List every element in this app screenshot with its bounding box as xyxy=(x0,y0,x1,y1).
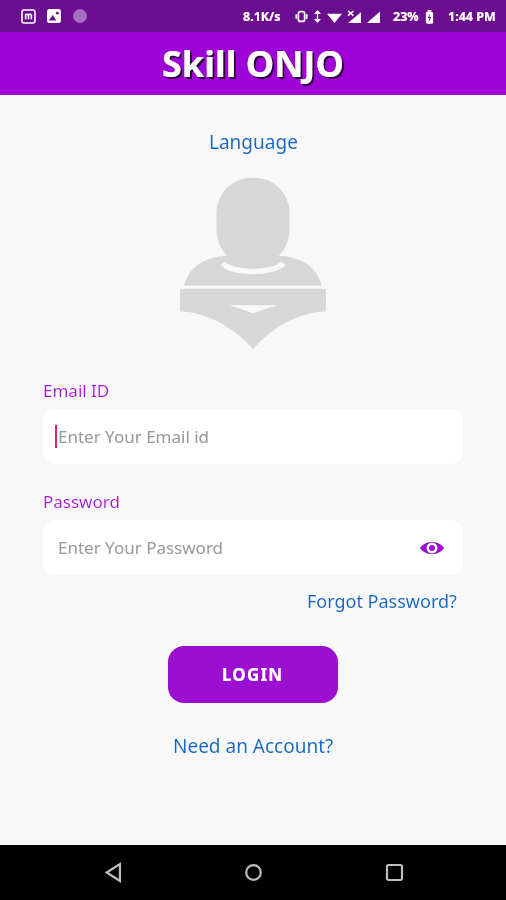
staticText: Enter Your Email id xyxy=(58,425,447,448)
button[interactable]: Recent apps xyxy=(366,845,422,900)
staticText: LOGIN xyxy=(222,663,284,686)
button[interactable]: Enter Your Email id xyxy=(43,409,463,464)
button[interactable]: Back xyxy=(85,845,141,900)
staticText: 8.1K/s xyxy=(243,8,281,25)
button[interactable]: Enter Your Password xyxy=(43,520,463,575)
staticText: Skill ONJO xyxy=(164,41,346,90)
other: Student avatar xyxy=(177,175,329,351)
staticText: 23% xyxy=(393,8,419,25)
staticText: 1:44 PM xyxy=(448,8,496,25)
staticText: Skill ONJO xyxy=(162,39,344,88)
staticText: Need an Account? xyxy=(173,733,334,759)
staticText: Email ID xyxy=(43,379,110,402)
staticText: Enter Your Password xyxy=(58,536,417,559)
button[interactable]: Show password xyxy=(417,533,447,563)
button[interactable]: LOGIN xyxy=(168,646,338,703)
button[interactable]: Forgot Password? xyxy=(301,586,463,617)
button[interactable]: Need an Account? xyxy=(165,730,342,762)
staticText: Forgot Password? xyxy=(307,589,457,614)
staticText: Password xyxy=(43,490,120,513)
button[interactable]: Language xyxy=(199,127,308,157)
button[interactable]: Home xyxy=(225,845,281,900)
staticText: Language xyxy=(209,129,298,155)
